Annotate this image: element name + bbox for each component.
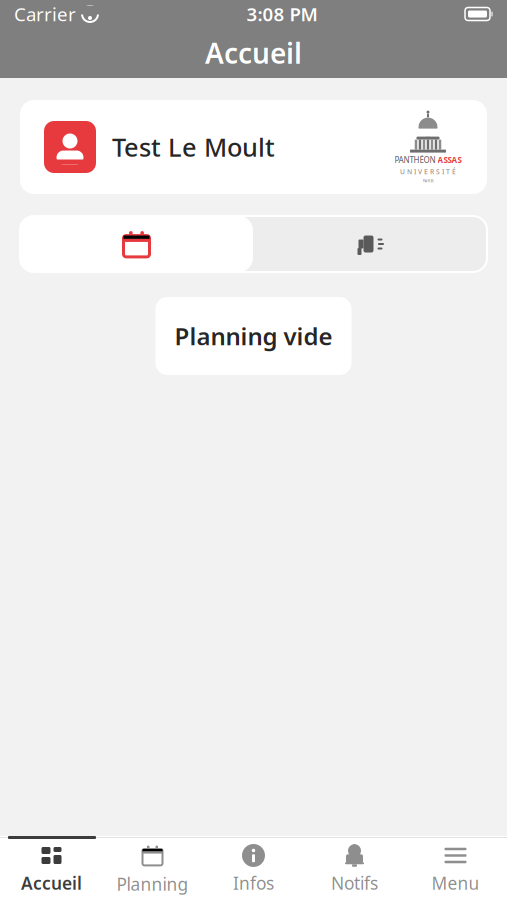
button[interactable]: Menu [405,841,506,897]
staticText: Infos [233,871,274,894]
staticText: Planning [116,872,188,895]
button[interactable]: Test Le Moult [20,100,487,194]
staticText: Planning vide [174,320,332,352]
button[interactable]: Infos [203,841,304,897]
staticText: Menu [431,871,479,894]
staticText: Notifs [331,871,378,894]
button[interactable]: Planning [102,841,203,897]
staticText: ASSAS [437,155,461,165]
staticText: 3:08 PM [246,2,317,26]
button[interactable]: Accueil [1,841,102,897]
button[interactable]: Notifs [304,841,405,897]
staticText: PARIS [422,178,433,183]
staticText: Accueil [21,871,82,894]
staticText: U N I V E R S I T É [400,167,456,176]
staticText: Carrier [14,2,76,26]
staticText: Accueil [205,34,302,72]
staticText: PANTHÉON [394,155,435,165]
button[interactable]: Planning [20,216,253,272]
button[interactable]: Annonces [253,216,487,272]
staticText: Test Le Moult [112,130,275,164]
